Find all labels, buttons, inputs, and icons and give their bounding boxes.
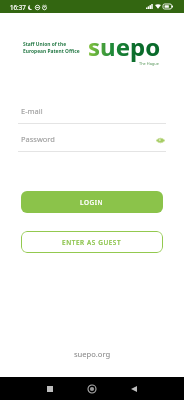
- staticText: Password: [21, 134, 157, 144]
- button[interactable]: Show password: [154, 134, 166, 146]
- button[interactable]: ENTER AS GUEST: [21, 231, 163, 253]
- staticText: LOGIN: [80, 198, 104, 207]
- staticText: suepo: [88, 30, 161, 63]
- staticText: E-mail: [21, 106, 169, 116]
- button[interactable]: Back: [125, 380, 143, 398]
- staticText: The Hague: [139, 61, 159, 66]
- staticText: European Patent Office: [23, 48, 80, 55]
- button[interactable]: Home: [83, 380, 101, 398]
- button[interactable]: LOGIN: [21, 191, 163, 213]
- staticText: ENTER AS GUEST: [62, 238, 122, 247]
- staticText: Staff Union of the: [23, 41, 67, 48]
- button[interactable]: suepo.org: [0, 349, 184, 359]
- staticText: 16:37: [10, 3, 26, 11]
- button[interactable]: Recent apps: [41, 380, 59, 398]
